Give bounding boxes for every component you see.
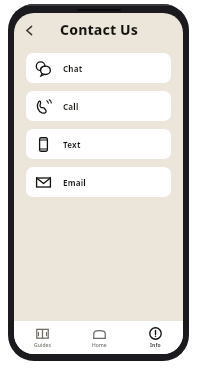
- staticText: Text: [63, 139, 81, 150]
- button[interactable]: Email: [26, 167, 171, 197]
- button[interactable]: Info: [127, 321, 183, 354]
- button[interactable]: Chat: [26, 53, 171, 83]
- staticText: Home: [92, 342, 107, 349]
- staticText: Guides: [34, 342, 52, 349]
- staticText: Call: [63, 101, 79, 112]
- staticText: Email: [63, 177, 86, 188]
- button[interactable]: Guides: [14, 321, 71, 354]
- button[interactable]: Call: [26, 91, 171, 121]
- staticText: Chat: [63, 63, 83, 74]
- button[interactable]: Text: [26, 129, 171, 159]
- staticText: Info: [150, 342, 161, 349]
- staticText: Contact Us: [60, 20, 138, 39]
- button[interactable]: Home: [71, 321, 127, 354]
- button[interactable]: Back: [16, 17, 42, 43]
